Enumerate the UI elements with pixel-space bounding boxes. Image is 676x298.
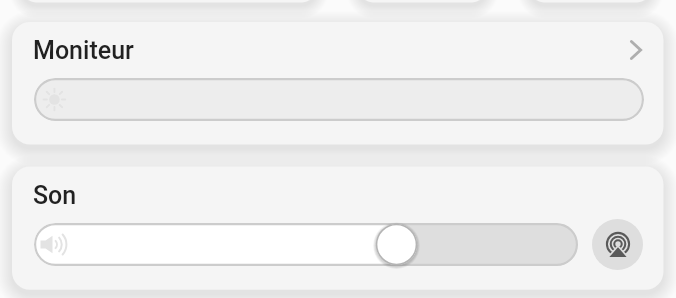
staticText: Moniteur <box>33 36 134 65</box>
button[interactable]: Luminosite <box>34 78 644 121</box>
button[interactable]: Moniteur <box>12 22 144 78</box>
button[interactable]: Son <box>12 167 87 223</box>
staticText: Son <box>33 181 77 210</box>
button[interactable]: Ouvrir les reglages du moniteur <box>613 27 659 73</box>
button[interactable]: Volume <box>34 223 578 266</box>
button[interactable]: AirPlay <box>592 219 643 270</box>
